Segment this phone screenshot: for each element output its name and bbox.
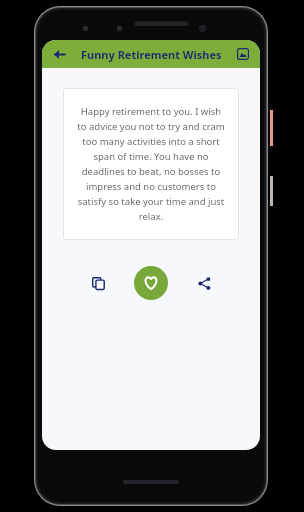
button[interactable]: View image: [233, 44, 253, 64]
button[interactable]: Back: [49, 44, 69, 64]
button[interactable]: Favorite: [134, 266, 168, 300]
staticText: Happy retirement to you. I wish to advic…: [75, 105, 227, 223]
staticText: Funny Retirement Wishes: [81, 47, 222, 62]
button[interactable]: Happy retirement to you. I wish to advic…: [63, 88, 239, 240]
button[interactable]: Copy: [82, 267, 114, 299]
button[interactable]: Share: [188, 267, 220, 299]
